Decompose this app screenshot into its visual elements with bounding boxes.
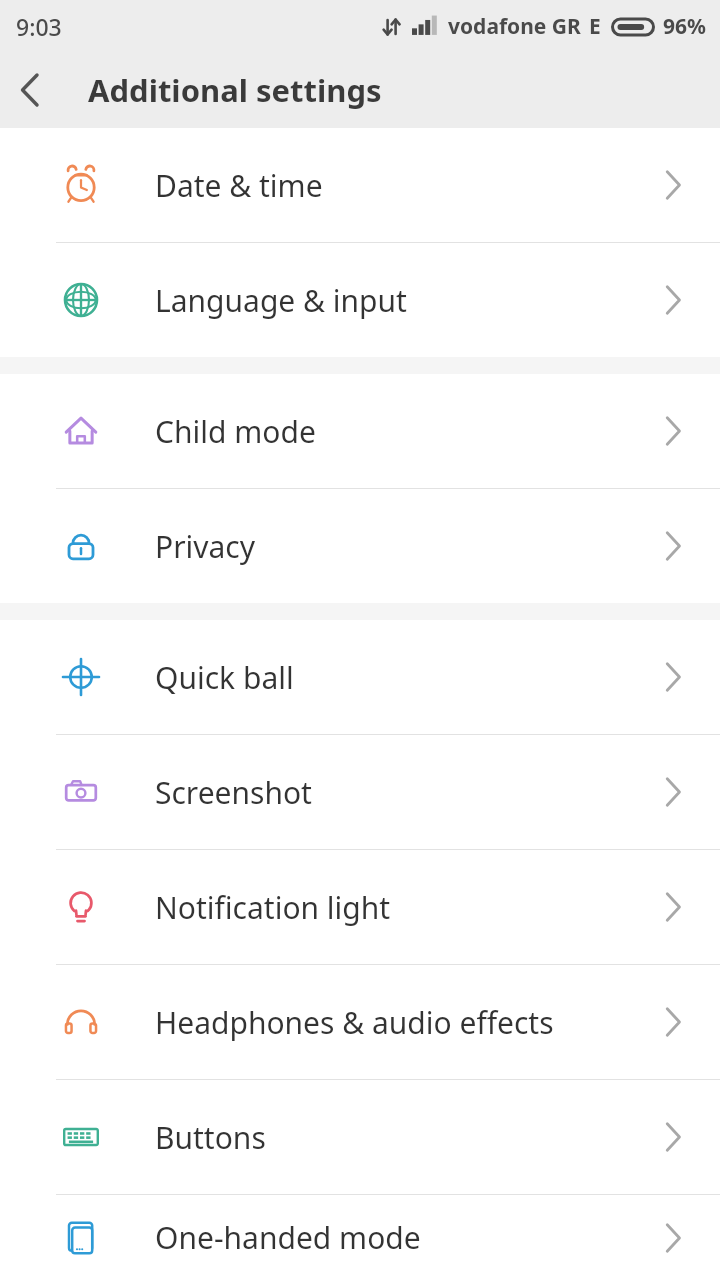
staticText: Language & input: [155, 280, 407, 321]
staticText: vodafone GR: [448, 12, 581, 41]
staticText: 9:03: [16, 11, 62, 42]
button[interactable]: Buttons: [0, 1080, 720, 1194]
staticText: One-handed mode: [155, 1217, 421, 1258]
staticText: Quick ball: [155, 657, 294, 698]
staticText: Additional settings: [88, 69, 382, 111]
staticText: 96%: [663, 12, 706, 41]
staticText: Buttons: [155, 1117, 266, 1158]
staticText: E: [589, 12, 601, 41]
button[interactable]: Language & input: [0, 243, 720, 357]
button[interactable]: Quick ball: [0, 620, 720, 734]
staticText: Child mode: [155, 411, 316, 452]
button[interactable]: Child mode: [0, 374, 720, 488]
staticText: Notification light: [155, 887, 391, 928]
staticText: Screenshot: [155, 772, 312, 813]
staticText: Headphones & audio effects: [155, 1002, 554, 1043]
button[interactable]: Screenshot: [0, 735, 720, 849]
staticText: Date & time: [155, 165, 323, 206]
button[interactable]: Date & time: [0, 128, 720, 242]
staticText: Privacy: [155, 526, 256, 567]
button[interactable]: Headphones & audio effects: [0, 965, 720, 1079]
button[interactable]: Back: [0, 52, 60, 128]
button[interactable]: Privacy: [0, 489, 720, 603]
button[interactable]: Notification light: [0, 850, 720, 964]
button[interactable]: One-handed mode: [0, 1195, 720, 1280]
